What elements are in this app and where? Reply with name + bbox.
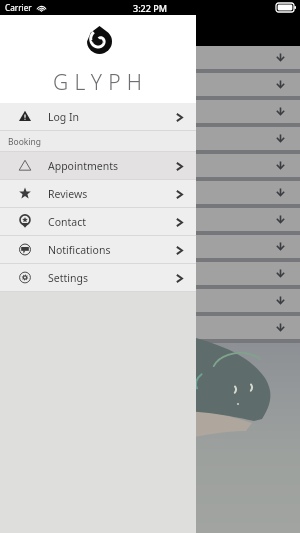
staticText: Reviews (48, 187, 88, 201)
staticText: Booking (8, 136, 42, 148)
button[interactable]: Log In (0, 103, 196, 131)
staticText: Contact (48, 215, 86, 229)
button[interactable]: Contact (0, 208, 196, 236)
button[interactable]: Reviews (0, 180, 196, 208)
staticText: GLYPH (53, 68, 149, 97)
button[interactable]: Notifications (0, 236, 196, 264)
staticText: Notifications (48, 243, 111, 257)
button[interactable]: Appointments (0, 152, 196, 180)
staticText: 3:22 PM (133, 2, 167, 14)
staticText: Carrier (5, 2, 32, 13)
staticText: Settings (48, 271, 88, 285)
staticText: Log In (48, 110, 80, 124)
button[interactable]: Settings (0, 264, 196, 292)
staticText: Appointments (48, 159, 119, 173)
